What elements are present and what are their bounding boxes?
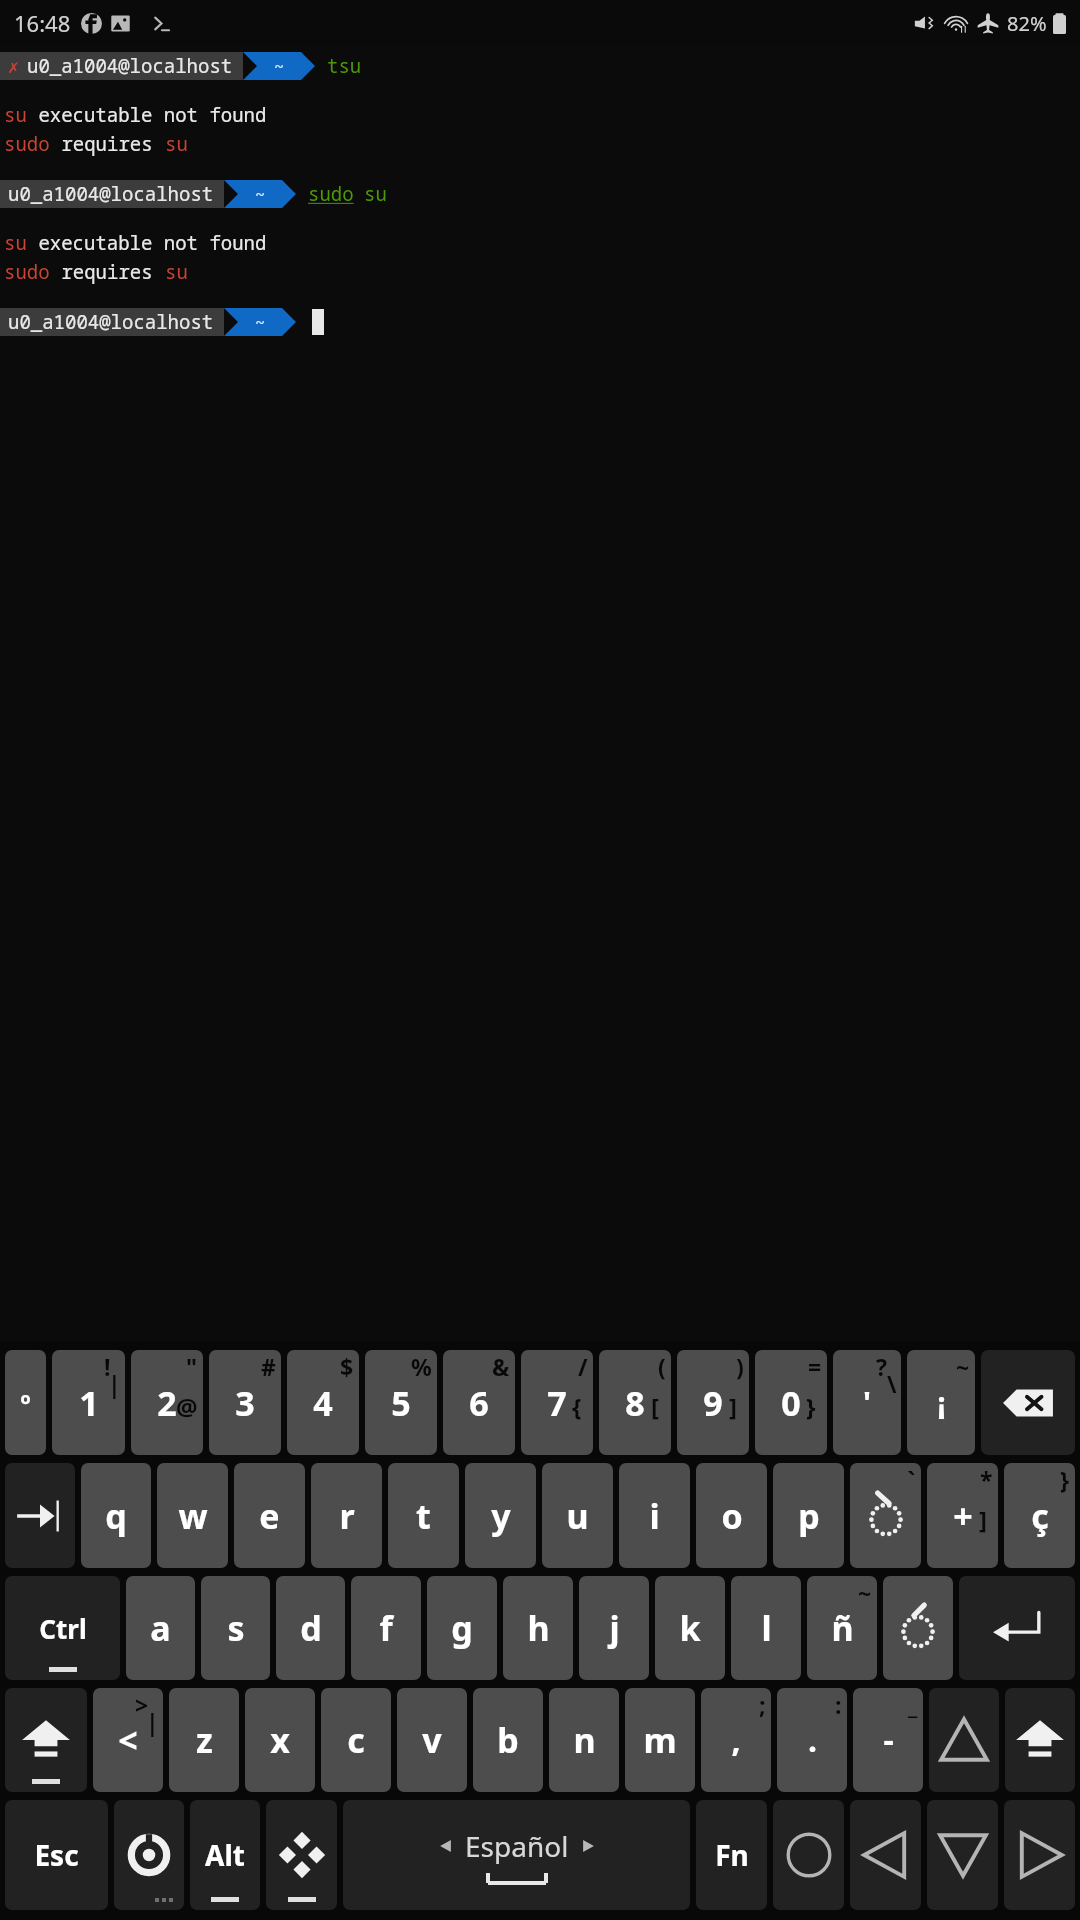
button[interactable]: l <box>731 1576 801 1680</box>
button[interactable]: 1 <box>52 1350 125 1455</box>
staticText: 1 <box>79 1380 99 1426</box>
staticText: ; <box>759 1689 766 1720</box>
button[interactable]: x <box>245 1688 315 1792</box>
button[interactable]: + <box>927 1463 998 1568</box>
staticText: ~ <box>274 55 285 78</box>
button[interactable]: r <box>311 1463 382 1568</box>
button[interactable]: Acute accent <box>883 1576 953 1680</box>
button[interactable]: Arrow right <box>1004 1800 1075 1910</box>
button[interactable]: , <box>701 1688 771 1792</box>
staticText: su <box>364 181 387 207</box>
staticText: tsu <box>327 53 362 79</box>
staticText: f <box>379 1605 393 1651</box>
button[interactable]: c <box>321 1688 391 1792</box>
button[interactable]: - <box>853 1688 923 1792</box>
button[interactable]: p <box>773 1463 844 1568</box>
staticText: w <box>178 1493 208 1539</box>
staticText: | <box>146 1706 159 1737</box>
staticText: su <box>4 230 27 256</box>
button[interactable]: ç <box>1004 1463 1075 1568</box>
staticText: su <box>165 131 188 157</box>
button[interactable]: m <box>625 1688 695 1792</box>
staticText: { <box>572 1390 582 1423</box>
staticText: : <box>835 1689 842 1720</box>
button[interactable]: Alt <box>190 1800 260 1910</box>
button[interactable]: e <box>234 1463 305 1568</box>
button[interactable]: w <box>157 1463 228 1568</box>
staticText: º <box>20 1385 31 1420</box>
button[interactable]: . <box>777 1688 847 1792</box>
button[interactable]: 6 <box>443 1350 515 1455</box>
staticText: ~ <box>858 1577 872 1608</box>
button[interactable]: Tab <box>5 1463 75 1568</box>
button[interactable]: º <box>5 1350 46 1455</box>
button[interactable]: Grave accent <box>850 1463 921 1568</box>
staticText: u0_a1004@localhost <box>27 53 233 79</box>
button[interactable]: Arrow down <box>927 1800 998 1910</box>
staticText: , <box>731 1718 741 1762</box>
button[interactable]: 0 <box>755 1350 827 1455</box>
button[interactable]: Settings <box>114 1800 184 1910</box>
staticText: } <box>1060 1464 1070 1495</box>
button[interactable]: y <box>465 1463 536 1568</box>
button[interactable]: ' <box>833 1350 901 1455</box>
button[interactable]: 8 <box>599 1350 671 1455</box>
staticText: d <box>300 1605 322 1651</box>
staticText: b <box>497 1717 519 1763</box>
button[interactable]: s <box>201 1576 270 1680</box>
button[interactable]: ¡ <box>907 1350 975 1455</box>
button[interactable]: < <box>93 1688 163 1792</box>
staticText: ! <box>104 1351 111 1382</box>
button[interactable]: n <box>549 1688 619 1792</box>
button[interactable]: z <box>169 1688 239 1792</box>
button[interactable]: Fn <box>696 1800 767 1910</box>
button[interactable]: d <box>276 1576 345 1680</box>
button[interactable]: h <box>503 1576 573 1680</box>
button[interactable]: Arrow up <box>929 1688 999 1792</box>
button[interactable]: Enter <box>959 1576 1075 1680</box>
staticText: y <box>491 1493 511 1539</box>
button[interactable]: Shift <box>5 1688 87 1792</box>
button[interactable]: 4 <box>287 1350 359 1455</box>
button[interactable]: Arrow left <box>850 1800 921 1910</box>
button[interactable]: 3 <box>209 1350 281 1455</box>
button[interactable]: Backspace <box>981 1350 1075 1455</box>
button[interactable]: u <box>542 1463 613 1568</box>
button[interactable]: 9 <box>677 1350 749 1455</box>
staticText: 8 <box>625 1380 645 1426</box>
staticText: r <box>339 1493 355 1539</box>
staticText: u <box>566 1493 589 1539</box>
button[interactable]: q <box>81 1463 151 1568</box>
button[interactable]: o <box>696 1463 767 1568</box>
staticText: v <box>422 1717 442 1763</box>
button[interactable]: v <box>397 1688 467 1792</box>
button[interactable]: Caps Lock <box>1005 1688 1075 1792</box>
button[interactable]: f <box>351 1576 421 1680</box>
button[interactable]: t <box>388 1463 459 1568</box>
button[interactable]: i <box>619 1463 690 1568</box>
button[interactable]: Space, Español <box>343 1800 690 1910</box>
button[interactable]: Ctrl <box>5 1576 120 1680</box>
button[interactable]: j <box>579 1576 649 1680</box>
staticText: 6 <box>469 1380 489 1426</box>
button[interactable]: k <box>655 1576 725 1680</box>
button[interactable]: a <box>126 1576 195 1680</box>
staticText: + <box>953 1493 973 1539</box>
staticText: Alt <box>205 1836 245 1874</box>
button[interactable]: ñ <box>807 1576 877 1680</box>
staticText: 16:48 <box>14 8 71 38</box>
staticText: u0_a1004@localhost <box>8 309 214 335</box>
staticText: ç <box>1031 1493 1049 1539</box>
staticText: " <box>186 1351 198 1382</box>
button[interactable]: Symbols <box>266 1800 337 1910</box>
staticText: ` <box>907 1464 916 1495</box>
button[interactable]: b <box>473 1688 543 1792</box>
button[interactable]: 7 <box>521 1350 593 1455</box>
button[interactable]: g <box>427 1576 497 1680</box>
staticText: ? <box>876 1351 887 1382</box>
button[interactable]: Esc <box>5 1800 108 1910</box>
button[interactable]: Home <box>773 1800 844 1910</box>
button[interactable]: 2 <box>131 1350 203 1455</box>
button[interactable]: 5 <box>365 1350 437 1455</box>
staticText: su <box>165 259 188 285</box>
